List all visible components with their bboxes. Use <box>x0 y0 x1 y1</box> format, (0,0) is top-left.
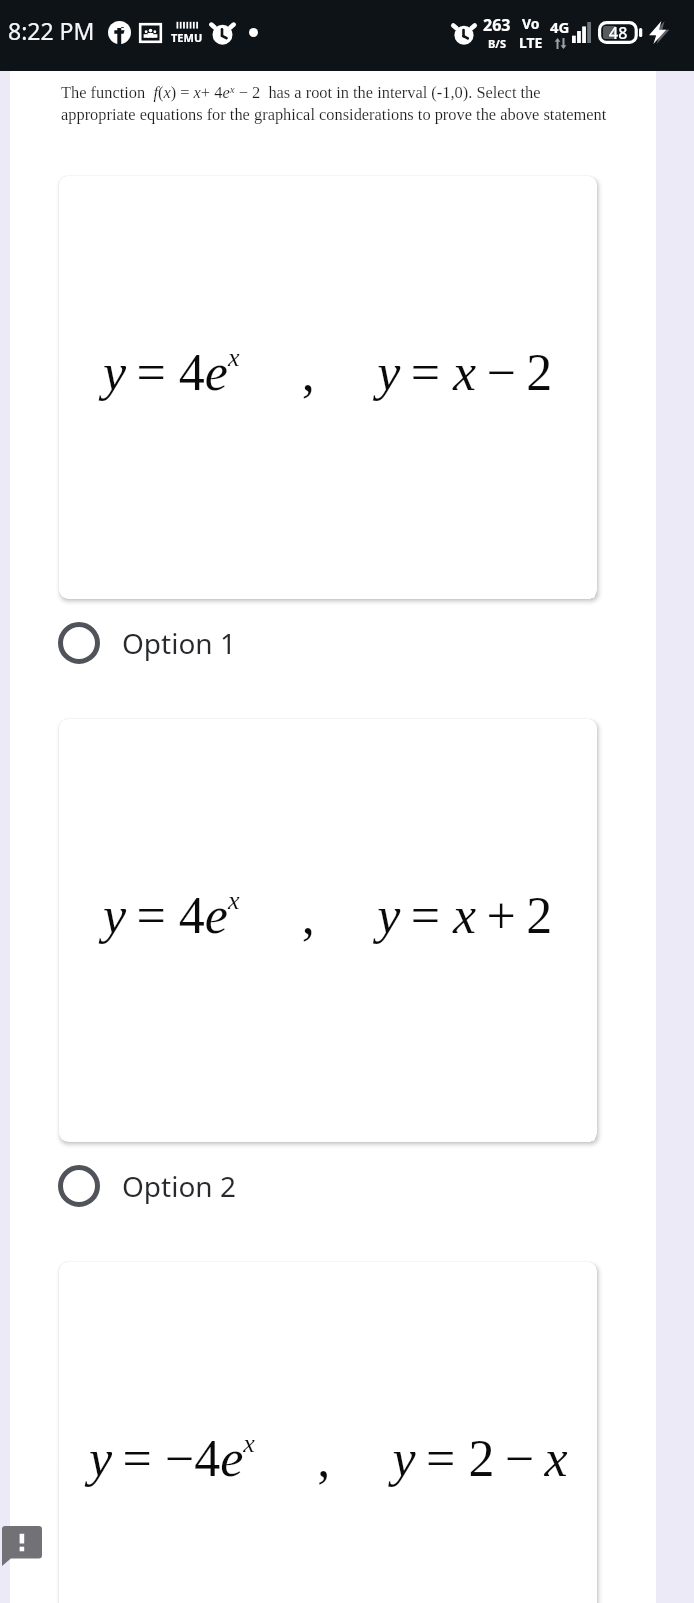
staticText: LTE <box>519 33 543 52</box>
staticText: y = −4ex , y = 2 − x <box>89 1429 568 1488</box>
staticText: 4G <box>550 17 570 37</box>
button[interactable]: Option 2 <box>0 1165 694 1207</box>
staticText: B/S <box>488 36 506 51</box>
staticText: 48 <box>609 22 628 44</box>
staticText: TEMU <box>171 30 203 45</box>
other: Photos <box>139 23 162 43</box>
button[interactable]: y = 4ex , y = x − 2 <box>59 176 597 599</box>
staticText: Vo <box>522 14 540 33</box>
staticText: Option 1 <box>122 624 236 662</box>
other: Alarm <box>211 21 234 44</box>
other: Facebook <box>108 21 131 44</box>
button[interactable]: y = 4ex , y = x + 2 <box>59 719 597 1142</box>
staticText: 8:22 PM <box>8 15 95 46</box>
other: Temu <box>171 21 203 45</box>
button[interactable]: Report an issue <box>2 1526 42 1566</box>
staticText: y = 4ex , y = x + 2 <box>103 886 553 945</box>
other: Alarm <box>453 22 475 44</box>
staticText: Option 2 <box>122 1167 236 1205</box>
staticText: 263 <box>483 14 511 36</box>
staticText: The function f(x) = x+ 4ex − 2 has a roo… <box>61 83 613 124</box>
button[interactable]: y = −4ex , y = 2 − x <box>59 1262 597 1603</box>
staticText: y = 4ex , y = x − 2 <box>103 343 553 402</box>
button[interactable]: Option 1 <box>0 622 694 664</box>
